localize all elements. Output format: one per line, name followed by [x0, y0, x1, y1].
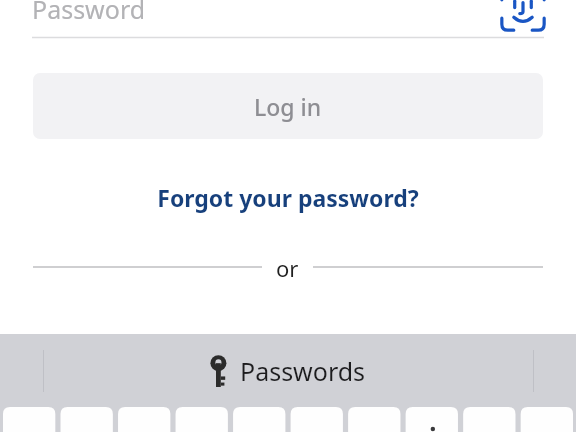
staticText: Passwords — [240, 354, 366, 388]
staticText: Log in — [254, 91, 322, 122]
button[interactable]: Password — [0, 0, 576, 40]
staticText: or — [276, 253, 299, 281]
button[interactable]: Log in — [33, 73, 543, 139]
staticText: Forgot your password? — [157, 182, 419, 213]
staticText: Password — [32, 0, 146, 26]
button[interactable]: Forgot your password? — [145, 176, 431, 219]
button[interactable]: Face ID — [500, 0, 546, 32]
button[interactable]: Passwords — [200, 348, 376, 394]
